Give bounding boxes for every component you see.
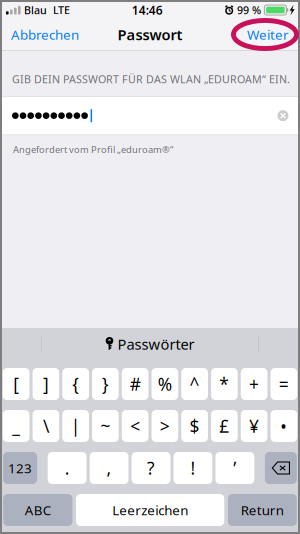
button[interactable]: > bbox=[151, 410, 178, 442]
staticText: * bbox=[219, 372, 229, 395]
staticText: Abbrechen bbox=[11, 26, 79, 43]
button[interactable]: Passwörter bbox=[105, 328, 194, 360]
staticText: . bbox=[65, 456, 70, 479]
staticText: , bbox=[107, 456, 112, 479]
staticText: LTE bbox=[53, 3, 70, 17]
staticText: { bbox=[72, 372, 79, 395]
button[interactable]: Return bbox=[228, 494, 297, 526]
staticText: ’ bbox=[233, 456, 236, 479]
staticText: > bbox=[160, 414, 170, 437]
staticText: 123 bbox=[8, 459, 32, 477]
staticText: Angefordert vom Profil „eduroam®“ bbox=[13, 143, 173, 156]
button[interactable]: . bbox=[48, 452, 87, 484]
staticText: $ bbox=[190, 414, 200, 437]
button[interactable]: + bbox=[241, 368, 267, 400]
button[interactable]: = bbox=[270, 368, 297, 400]
button[interactable]: ABC bbox=[3, 494, 72, 526]
staticText: • bbox=[280, 414, 287, 437]
staticText: Leerzeichen bbox=[112, 501, 188, 519]
staticText: + bbox=[249, 372, 259, 395]
staticText: ? bbox=[147, 456, 155, 479]
button[interactable]: \ bbox=[32, 410, 59, 442]
staticText: Blau bbox=[24, 3, 47, 17]
staticText: } bbox=[102, 372, 109, 395]
button[interactable]: Abbrechen bbox=[2, 18, 88, 51]
staticText: ] bbox=[43, 372, 49, 395]
staticText: ABC bbox=[25, 501, 51, 519]
button[interactable]: • bbox=[270, 410, 297, 442]
button[interactable]: _ bbox=[3, 410, 29, 442]
button[interactable]: ¥ bbox=[241, 410, 267, 442]
button[interactable]: Löschen bbox=[271, 101, 295, 131]
staticText: Passwort bbox=[117, 25, 182, 44]
staticText: = bbox=[279, 372, 289, 395]
staticText: ¥ bbox=[249, 414, 259, 437]
staticText: £ bbox=[219, 414, 229, 437]
staticText: Return bbox=[241, 501, 284, 519]
button[interactable]: } bbox=[92, 368, 119, 400]
button[interactable]: ^ bbox=[181, 368, 208, 400]
button[interactable]: ? bbox=[132, 452, 170, 484]
button[interactable]: 123 bbox=[3, 452, 37, 484]
button[interactable]: [ bbox=[3, 368, 29, 400]
staticText: Weiter bbox=[247, 26, 289, 43]
staticText: ! bbox=[190, 456, 195, 479]
button[interactable]: # bbox=[122, 368, 148, 400]
staticText: ^ bbox=[190, 372, 200, 395]
staticText: % bbox=[158, 372, 172, 395]
button[interactable]: { bbox=[62, 368, 89, 400]
button[interactable]: ’ bbox=[215, 452, 254, 484]
staticText: _ bbox=[12, 414, 20, 437]
button[interactable]: £ bbox=[211, 410, 238, 442]
button[interactable]: , bbox=[90, 452, 128, 484]
button[interactable]: ! bbox=[173, 452, 212, 484]
staticText: 14:46 bbox=[132, 2, 163, 18]
button[interactable]: Weiter bbox=[238, 18, 298, 51]
button[interactable]: * bbox=[211, 368, 238, 400]
staticText: ~ bbox=[100, 414, 110, 437]
button[interactable]: < bbox=[122, 410, 148, 442]
button[interactable]: | bbox=[62, 410, 89, 442]
staticText: Passwörter bbox=[117, 334, 194, 354]
staticText: GIB DEIN PASSWORT FÜR DAS WLAN „EDUROAM“… bbox=[12, 72, 290, 86]
staticText: 99 % bbox=[237, 3, 261, 17]
button[interactable]: ~ bbox=[92, 410, 119, 442]
staticText: # bbox=[130, 372, 141, 395]
button[interactable]: Rückschritt bbox=[265, 452, 297, 484]
button[interactable]: $ bbox=[181, 410, 208, 442]
staticText: \ bbox=[43, 414, 49, 437]
button[interactable]: ] bbox=[32, 368, 59, 400]
staticText: | bbox=[71, 414, 81, 437]
staticText: < bbox=[130, 414, 140, 437]
staticText: [ bbox=[13, 372, 19, 395]
button[interactable]: Leerzeichen bbox=[76, 494, 224, 526]
button[interactable]: % bbox=[151, 368, 178, 400]
